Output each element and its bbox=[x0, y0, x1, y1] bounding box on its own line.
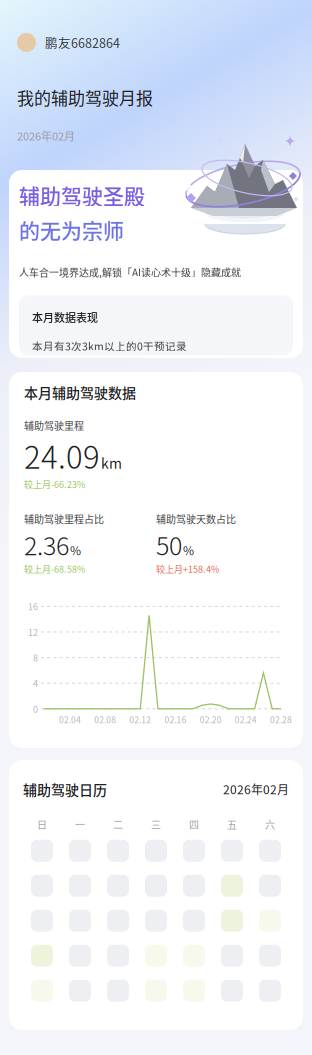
staticText: 12 bbox=[28, 625, 38, 638]
staticText: 较上月-66.23% bbox=[24, 478, 85, 491]
staticText: 本月有3次3km以上的0干预记录 bbox=[32, 338, 187, 353]
staticText: 二 bbox=[113, 817, 123, 832]
staticText: 人车合一境界达成,解锁「AI读心术十级」隐藏成就 bbox=[19, 265, 241, 279]
staticText: 02.08 bbox=[94, 713, 116, 726]
staticText: 02.04 bbox=[59, 713, 81, 726]
staticText: 0 bbox=[33, 702, 38, 715]
staticText: % bbox=[183, 541, 194, 559]
staticText: 四 bbox=[189, 817, 199, 832]
staticText: 本月数据表现 bbox=[32, 309, 98, 325]
staticText: 一 bbox=[75, 817, 85, 832]
staticText: 2.36 bbox=[24, 526, 69, 562]
staticText: 六 bbox=[265, 817, 275, 832]
staticText: 辅助驾驶圣殿 bbox=[19, 180, 145, 210]
staticText: 五 bbox=[227, 817, 237, 832]
staticText: 8 bbox=[33, 651, 38, 664]
staticText: 02.16 bbox=[164, 713, 186, 726]
staticText: 2026年02月 bbox=[223, 780, 289, 798]
staticText: 辅助驾驶里程占比 bbox=[24, 512, 104, 526]
staticText: 辅助驾驶日历 bbox=[23, 779, 107, 799]
staticText: % bbox=[70, 541, 81, 559]
staticText: 鹏友6682864 bbox=[45, 33, 120, 52]
staticText: 较上月+158.4% bbox=[156, 562, 219, 575]
staticText: 本月辅助驾驶数据 bbox=[24, 382, 136, 402]
staticText: 辅助驾驶里程 bbox=[24, 418, 84, 433]
staticText: 我的辅助驾驶月报 bbox=[17, 85, 153, 110]
staticText: 02.12 bbox=[129, 713, 151, 726]
staticText: 较上月-68.58% bbox=[24, 562, 85, 575]
staticText: 50 bbox=[156, 526, 182, 562]
staticText: 02.20 bbox=[200, 713, 222, 726]
staticText: 24.09 bbox=[24, 433, 100, 478]
staticText: 16 bbox=[28, 600, 38, 613]
staticText: 4 bbox=[33, 677, 38, 690]
staticText: 02.24 bbox=[235, 713, 257, 726]
staticText: 2026年02月 bbox=[17, 128, 75, 143]
staticText: km bbox=[101, 452, 122, 473]
staticText: 的无为宗师 bbox=[19, 214, 124, 245]
staticText: 日 bbox=[37, 817, 47, 832]
staticText: 三 bbox=[151, 817, 161, 832]
staticText: 02.28 bbox=[270, 713, 292, 726]
staticText: 辅助驾驶天数占比 bbox=[156, 512, 236, 526]
